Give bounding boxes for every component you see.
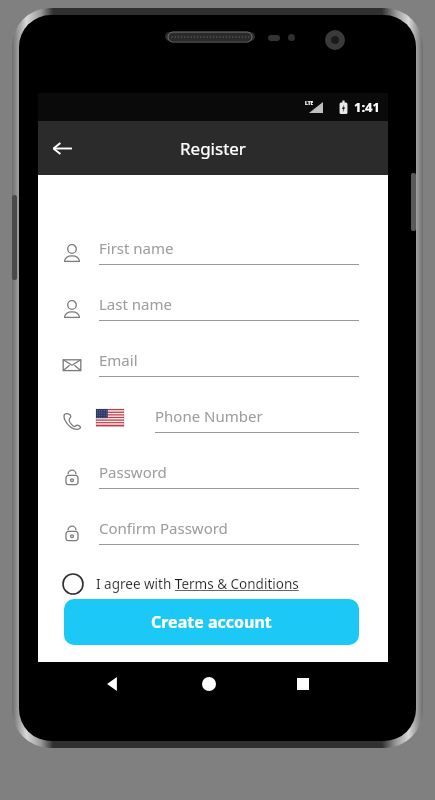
button[interactable]: Email xyxy=(62,348,364,388)
button[interactable]: First name xyxy=(62,236,364,276)
button[interactable]: Phone Number xyxy=(62,404,364,444)
staticText: Password xyxy=(99,462,167,482)
button[interactable]: Password xyxy=(62,460,364,500)
staticText: Phone Number xyxy=(155,406,263,426)
staticText: First name xyxy=(99,238,174,258)
staticText: Confirm Password xyxy=(99,518,228,538)
button[interactable]: Create account xyxy=(64,599,359,645)
button[interactable]: Confirm Password xyxy=(62,516,364,556)
staticText: Email xyxy=(99,350,138,370)
button[interactable]: Back xyxy=(38,124,86,172)
button[interactable]: I agree with Terms & Conditions xyxy=(62,568,312,600)
staticText: 1:41 xyxy=(354,98,380,116)
staticText: I agree with Terms & Conditions xyxy=(96,575,299,593)
button[interactable]: Last name xyxy=(62,292,364,332)
staticText: Register xyxy=(180,137,246,160)
button[interactable]: Back xyxy=(97,669,127,699)
staticText: LTE xyxy=(305,100,314,107)
staticText: Create account xyxy=(151,611,272,633)
button[interactable]: Home xyxy=(194,669,224,699)
staticText: Last name xyxy=(99,294,172,314)
button[interactable]: Recent apps xyxy=(288,669,318,699)
